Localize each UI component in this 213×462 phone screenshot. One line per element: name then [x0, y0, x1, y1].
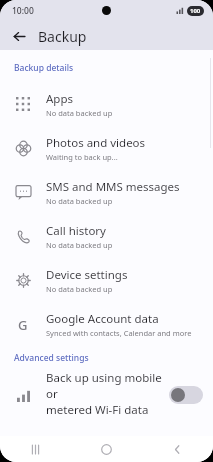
button[interactable]: Recents [0, 436, 71, 462]
staticText: G [18, 316, 28, 332]
staticText: No data backed up [46, 196, 113, 206]
button[interactable]: Apps [0, 82, 213, 126]
staticText: Photos and videos [46, 135, 146, 151]
staticText: Apps [46, 91, 74, 107]
staticText: Synced with contacts, Calendar and more [46, 328, 192, 338]
staticText: Call history [46, 223, 106, 239]
staticText: No data backed up [46, 108, 113, 118]
staticText: SMS and MMS messages [46, 179, 180, 195]
button[interactable]: Back [142, 436, 213, 462]
staticText: No data backed up [46, 240, 113, 250]
button[interactable]: Device settings [0, 258, 213, 302]
staticText: Advanced settings [14, 352, 89, 364]
staticText: Waiting to back up... [46, 152, 118, 162]
staticText: Google Account data [46, 311, 159, 327]
button[interactable]: Back up using mobile or [0, 370, 213, 420]
button[interactable]: Photos and videos [0, 126, 213, 170]
staticText: metered Wi-Fi data [46, 402, 149, 418]
staticText: Backup [38, 27, 87, 46]
button[interactable]: SMS and MMS messages [0, 170, 213, 214]
staticText: Back up using mobile or [46, 370, 163, 402]
staticText: No data backed up [46, 284, 113, 294]
staticText: Backup details [14, 62, 74, 74]
button[interactable]: Back [6, 23, 32, 49]
staticText: 10:00 [12, 5, 34, 17]
button[interactable]: G [0, 302, 213, 346]
staticText: 100 [190, 7, 201, 15]
button[interactable]: Call history [0, 214, 213, 258]
staticText: Device settings [46, 267, 128, 283]
button[interactable]: Home [71, 436, 142, 462]
button[interactable]: Back up using mobile data toggle [169, 386, 203, 404]
